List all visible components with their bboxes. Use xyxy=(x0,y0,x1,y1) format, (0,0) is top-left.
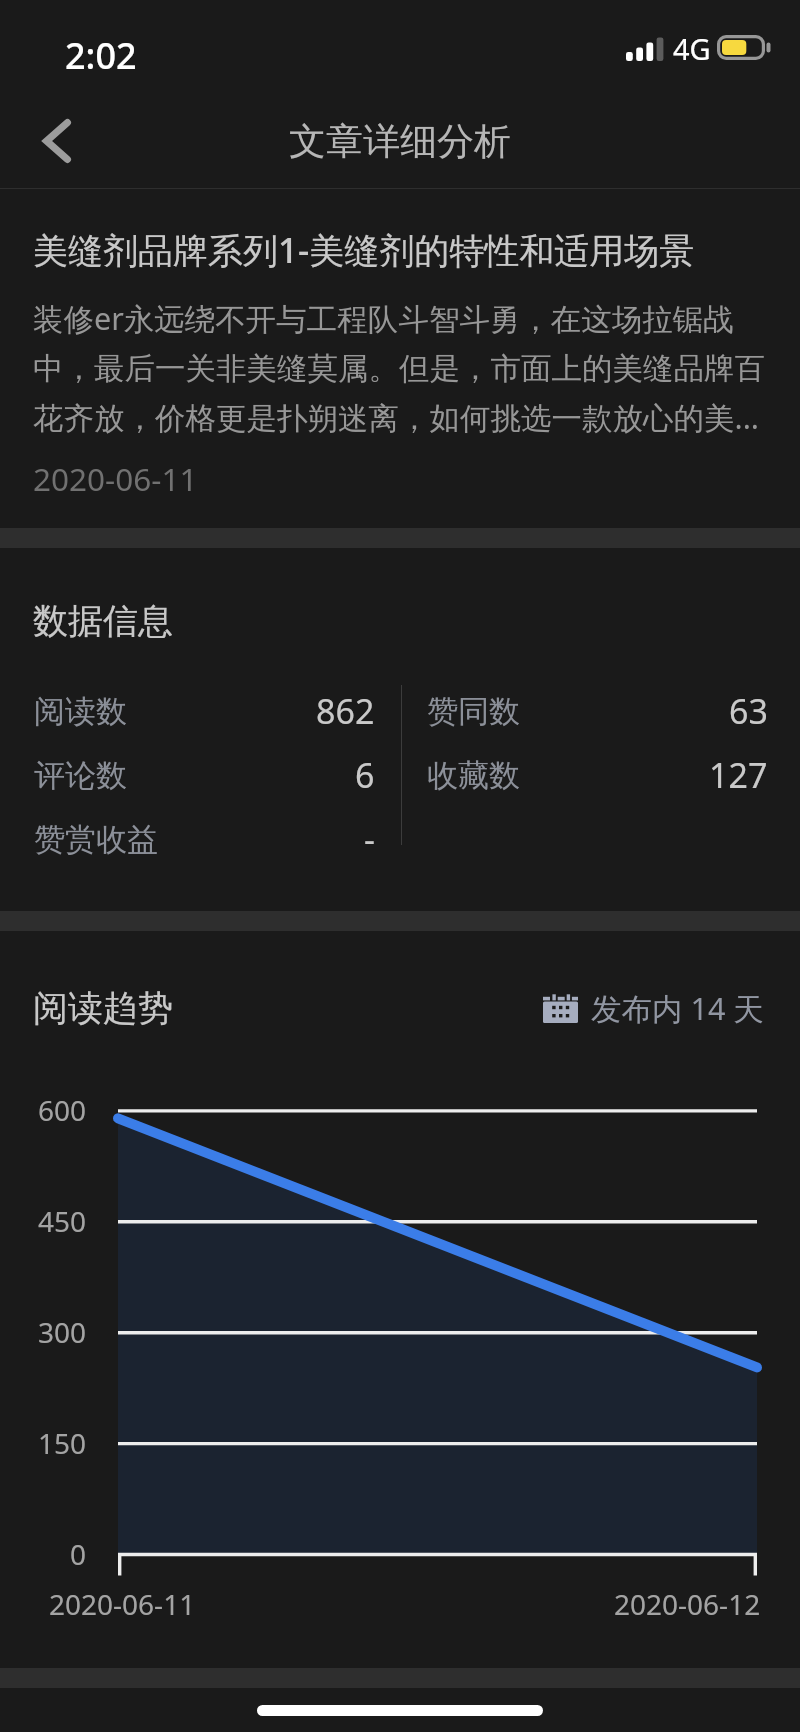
staticText: 数据信息 xyxy=(33,599,173,643)
staticText: 6 xyxy=(355,752,375,798)
staticText: 评论数 xyxy=(34,756,127,795)
staticText: 127 xyxy=(709,752,768,798)
staticText: 赞赏收益 xyxy=(34,820,158,859)
staticText: 赞同数 xyxy=(427,692,520,731)
button[interactable]: 收藏数 xyxy=(401,743,800,807)
staticText: 2020-06-11 xyxy=(49,1585,196,1623)
staticText: 2020-06-12 xyxy=(614,1585,761,1623)
button[interactable]: Back xyxy=(20,104,94,178)
staticText: 862 xyxy=(316,688,375,734)
staticText: 阅读数 xyxy=(34,692,127,731)
staticText: 收藏数 xyxy=(427,756,520,795)
staticText: 装修er永远绕不开与工程队斗智斗勇，在这场拉锯战中，最后一关非美缝莫属。但是，市… xyxy=(33,297,767,439)
staticText: 0 xyxy=(70,1535,87,1573)
staticText: 2:02 xyxy=(65,31,137,80)
staticText: 美缝剂品牌系列1-美缝剂的特性和适用场景 xyxy=(33,226,695,274)
staticText: 450 xyxy=(38,1202,87,1240)
button[interactable]: 发布内 14 天 xyxy=(543,987,764,1029)
staticText: - xyxy=(364,816,375,862)
staticText: 阅读趋势 xyxy=(33,986,173,1030)
staticText: 发布内 14 天 xyxy=(591,987,764,1029)
button[interactable]: 美缝剂品牌系列1-美缝剂的特性和适用场景 xyxy=(0,189,800,528)
staticText: 600 xyxy=(38,1091,87,1129)
button[interactable]: 评论数 xyxy=(0,743,401,807)
staticText: 文章详细分析 xyxy=(289,118,511,165)
staticText: 2020-06-11 xyxy=(33,457,198,500)
button[interactable]: 阅读数 xyxy=(0,679,401,743)
staticText: 4G xyxy=(673,29,711,68)
staticText: 300 xyxy=(38,1313,87,1351)
staticText: 150 xyxy=(38,1424,87,1462)
staticText: 63 xyxy=(729,688,768,734)
button[interactable]: 赞赏收益 xyxy=(0,807,401,871)
button[interactable]: 赞同数 xyxy=(401,679,800,743)
